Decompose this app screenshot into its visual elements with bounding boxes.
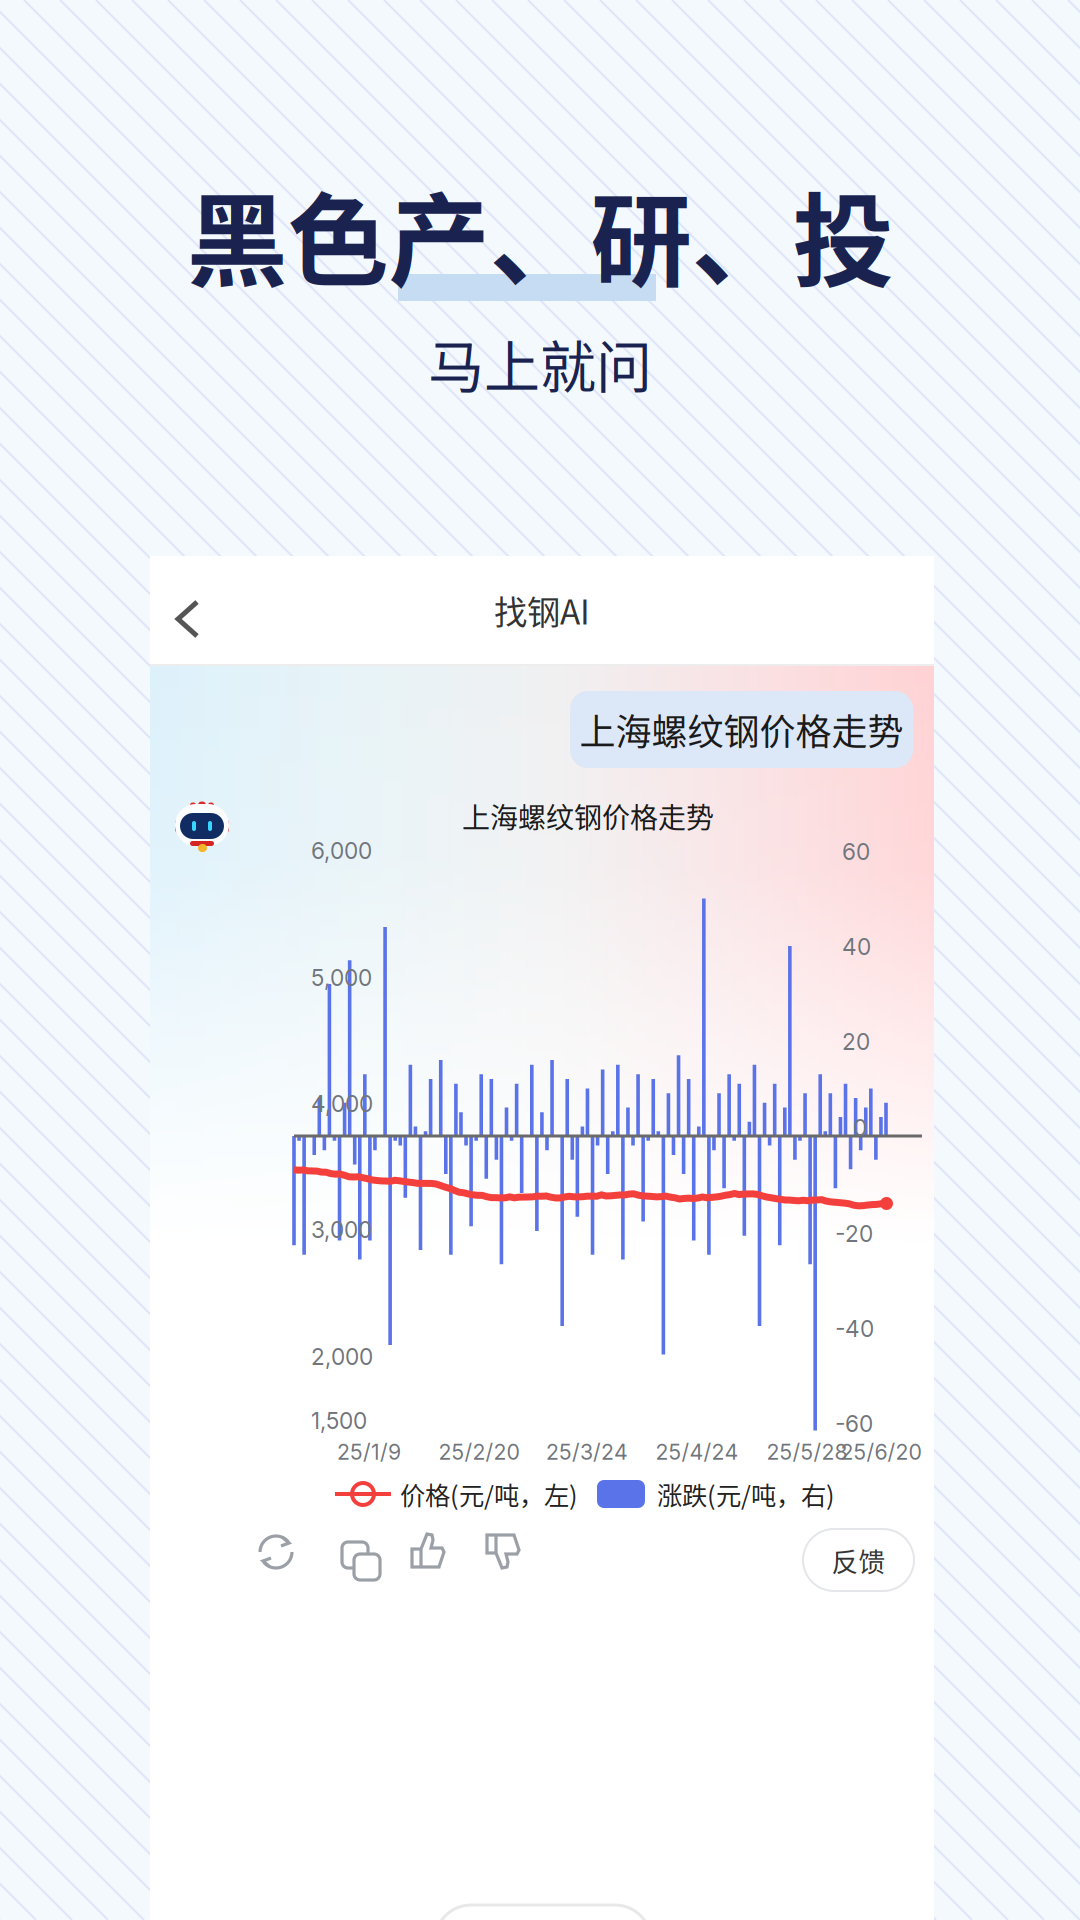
button[interactable]: Dislike (480, 1530, 524, 1574)
button[interactable]: Like (405, 1530, 449, 1574)
staticText: 25/1/9 (337, 1439, 401, 1465)
button[interactable]: Regenerate (254, 1530, 298, 1574)
staticText: 黑色产、研、投 (186, 161, 893, 307)
staticText: 25/3/24 (546, 1439, 628, 1465)
staticText: 6,000 (311, 837, 372, 864)
staticText: 25/4/24 (655, 1439, 738, 1465)
staticText: 3,000 (311, 1216, 372, 1243)
staticText: 涨跌(元/吨，右) (657, 1476, 835, 1512)
staticText: 4,000 (311, 1090, 373, 1117)
staticText: 40 (842, 933, 871, 960)
staticText: 20 (842, 1028, 870, 1055)
staticText: 60 (842, 838, 870, 865)
staticText: 马上就问 (428, 322, 652, 404)
staticText: 5,000 (311, 964, 372, 991)
staticText: 反馈 (831, 1541, 885, 1579)
staticText: -40 (835, 1315, 874, 1342)
staticText: 25/6/20 (840, 1439, 921, 1465)
staticText: 上海螺纹钢价格走势 (579, 703, 903, 755)
button[interactable]: 反馈 (803, 1529, 914, 1591)
staticText: 价格(元/吨，左) (400, 1476, 578, 1512)
staticText: -20 (835, 1220, 873, 1247)
staticText: 25/5/28 (766, 1439, 847, 1465)
staticText: 2,000 (311, 1343, 373, 1370)
staticText: 找钢AI (494, 586, 590, 634)
staticText: 上海螺纹钢价格走势 (462, 796, 714, 836)
staticText: 25/2/20 (438, 1439, 519, 1465)
button[interactable]: Copy (330, 1530, 374, 1574)
button[interactable]: Back (159, 584, 225, 654)
staticText: 1,500 (311, 1407, 367, 1434)
staticText: 0 (853, 1114, 867, 1141)
staticText: -60 (835, 1410, 873, 1437)
